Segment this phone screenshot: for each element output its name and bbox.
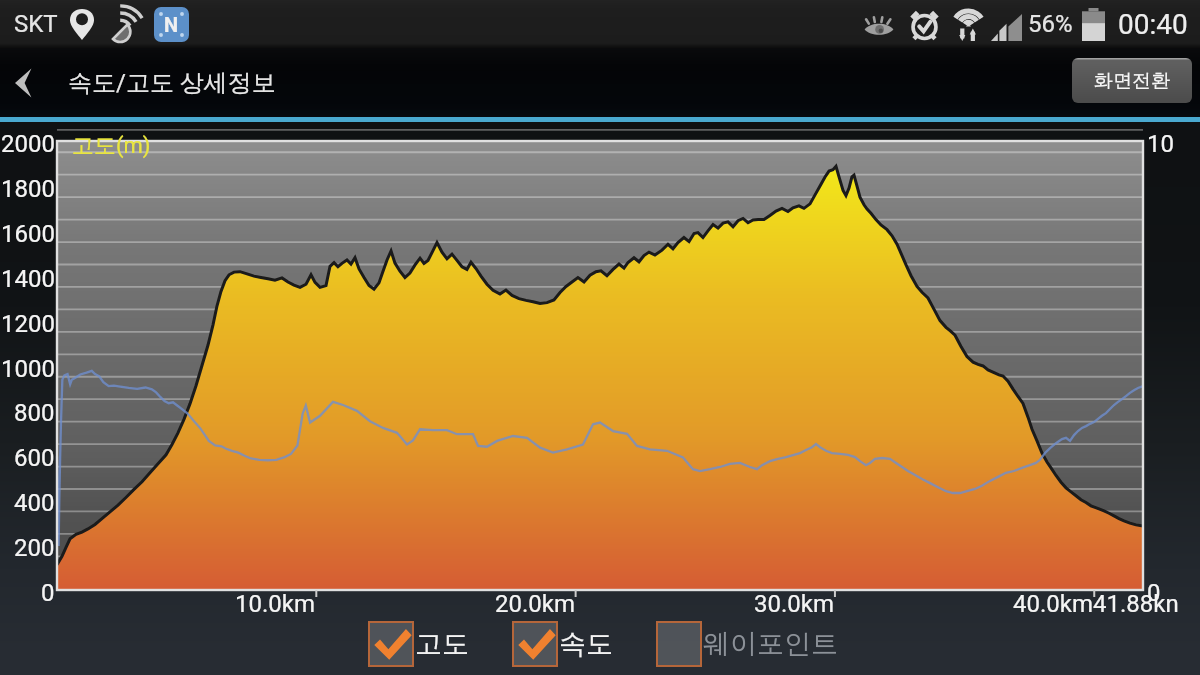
staticText: 1600 <box>1 220 55 248</box>
staticText: 화면전환 <box>1094 69 1170 93</box>
button[interactable]: Back <box>0 48 46 117</box>
button[interactable]: 화면전환 <box>1072 58 1192 103</box>
staticText: 41.88kn <box>1093 590 1179 618</box>
staticText: 10 <box>1147 130 1174 158</box>
staticText: 30.0km <box>754 590 835 618</box>
staticText: 웨이포인트 <box>703 627 838 661</box>
staticText: 속도/고도 상세정보 <box>68 68 276 98</box>
staticText: N <box>164 13 179 36</box>
button[interactable]: 고도 <box>369 622 469 666</box>
staticText: 40.0km <box>1013 590 1094 618</box>
staticText: 200 <box>14 534 55 562</box>
staticText: 2000 <box>1 130 55 158</box>
staticText: 1800 <box>1 175 55 203</box>
staticText: 800 <box>14 399 55 427</box>
staticText: 고도(m) <box>72 132 151 160</box>
staticText: 20.0km <box>495 590 576 618</box>
staticText: 고도 <box>415 627 469 661</box>
staticText: 600 <box>14 444 55 472</box>
button[interactable]: 웨이포인트 <box>657 622 838 666</box>
staticText: 00:40 <box>1118 8 1188 41</box>
staticText: 1400 <box>1 265 55 293</box>
staticText: SKT <box>14 10 58 38</box>
button[interactable]: 속도 <box>513 622 613 666</box>
staticText: 400 <box>14 489 55 517</box>
staticText: 0 <box>41 579 55 607</box>
staticText: 1200 <box>1 310 55 338</box>
staticText: 속도 <box>559 627 613 661</box>
staticText: 56% <box>1028 10 1073 38</box>
staticText: 1000 <box>1 355 55 383</box>
staticText: 0 <box>1147 579 1161 607</box>
staticText: 10.0km <box>235 590 316 618</box>
